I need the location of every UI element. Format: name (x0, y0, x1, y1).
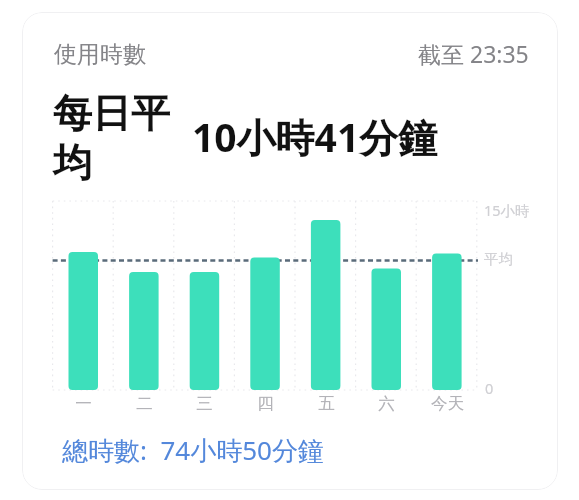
staticText: 五 (318, 393, 335, 414)
staticText: 0 (485, 378, 494, 398)
staticText: 每日平均 (53, 89, 173, 188)
staticText: 10小時41分鐘 (192, 110, 438, 163)
button[interactable]: 五 (296, 201, 356, 390)
staticText: 今天 (431, 393, 464, 414)
staticText: 一 (75, 393, 92, 414)
button[interactable]: 今天 (417, 201, 477, 390)
staticText: 使用時數 (54, 40, 146, 69)
button[interactable]: 四 (235, 201, 295, 390)
button[interactable]: 一 (53, 201, 113, 390)
staticText: 15小時 (484, 200, 530, 220)
button[interactable]: 使用時數 (22, 12, 558, 490)
button[interactable]: 總時數: 74小時50分鐘 (62, 432, 324, 468)
staticText: 六 (378, 393, 395, 414)
staticText: 平均 (484, 250, 513, 268)
button[interactable]: 三 (174, 201, 234, 390)
staticText: 三 (196, 393, 213, 414)
staticText: 截至 23:35 (418, 38, 529, 69)
button[interactable]: 六 (356, 201, 416, 390)
staticText: 二 (136, 393, 153, 414)
button[interactable]: 二 (114, 201, 174, 390)
staticText: 四 (257, 393, 274, 414)
